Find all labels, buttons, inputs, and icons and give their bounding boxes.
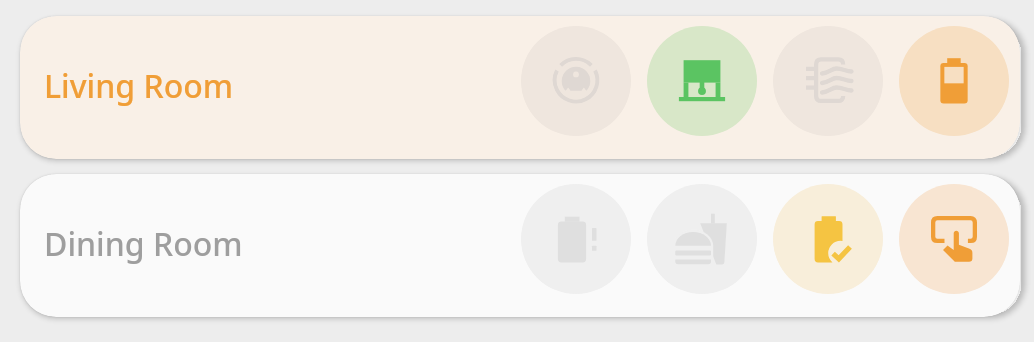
button[interactable]: Battery [899, 26, 1009, 136]
button[interactable]: Battery charged [773, 184, 883, 294]
button[interactable]: Food [647, 184, 757, 294]
staticText: Living Room [44, 64, 234, 108]
button[interactable]: Robot vacuum [521, 26, 631, 136]
button[interactable]: Tap to control [899, 184, 1009, 294]
button[interactable]: Air purifier [773, 26, 883, 136]
button[interactable]: Living Room [20, 16, 1020, 159]
button[interactable]: Battery alert [521, 184, 631, 294]
button[interactable]: Dining Room [20, 174, 1020, 317]
button[interactable]: Roller shades [647, 26, 757, 136]
staticText: Dining Room [44, 222, 243, 266]
